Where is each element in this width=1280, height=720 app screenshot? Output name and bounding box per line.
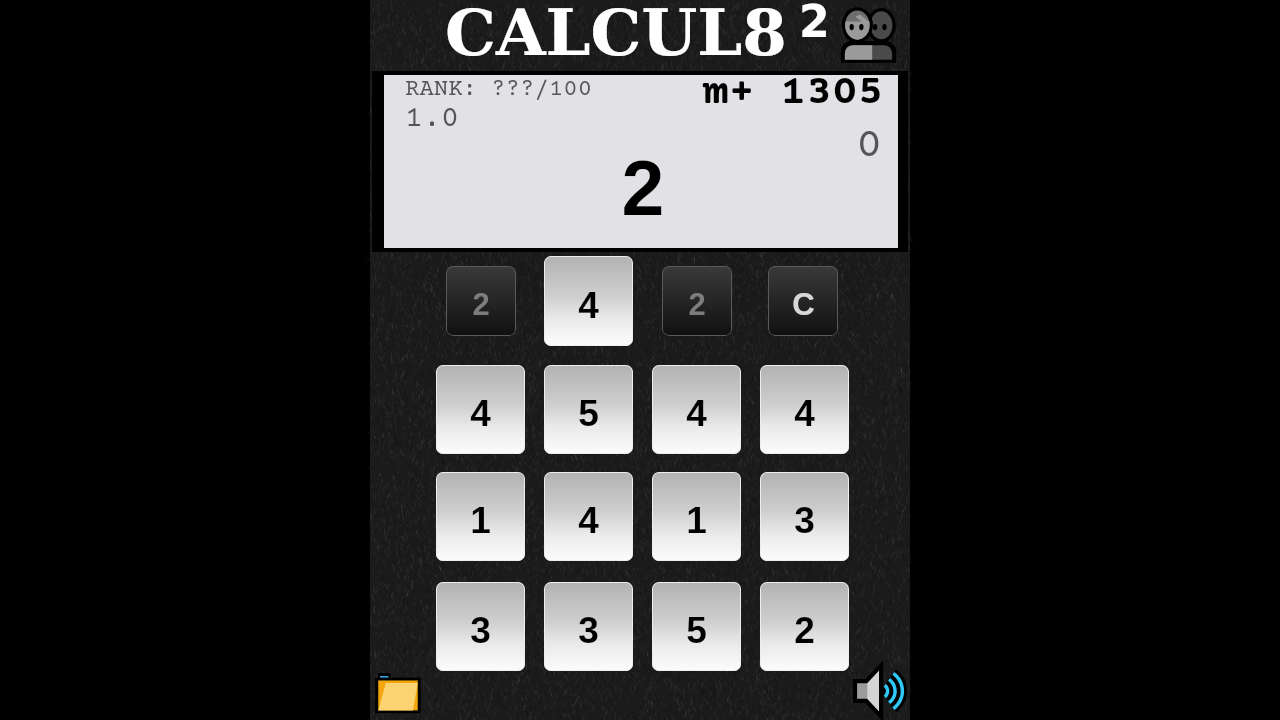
button[interactable]: 3 [544,582,633,671]
staticText: 1 [686,500,707,541]
staticText: m+ 1305 [703,69,884,117]
button[interactable]: 5 [544,365,633,454]
staticText: 0 [856,122,883,171]
button[interactable]: 3 [436,582,525,671]
staticText: 1.0 [405,103,459,137]
button[interactable]: 2 [760,582,849,671]
button[interactable]: 4 [544,256,633,346]
button[interactable]: 4 [760,365,849,454]
button[interactable]: Multiplayer [840,8,897,63]
staticText: 2 [472,287,490,322]
button[interactable]: 4 [652,365,741,454]
button[interactable]: 4 [544,472,633,561]
button[interactable]: 1 [652,472,741,561]
button[interactable]: 1 [436,472,525,561]
staticText: 4 [578,500,599,541]
staticText: 2 [794,610,815,651]
staticText: 2 [386,145,900,231]
staticText: 3 [794,500,815,541]
staticText: 4 [686,393,707,434]
staticText: CALCUL8 [445,0,787,70]
button[interactable]: 4 [436,365,525,454]
staticText: RANK: ???/100 [405,76,593,103]
button[interactable]: 5 [652,582,741,671]
staticText: C [792,287,815,322]
staticText: 3 [578,610,599,651]
staticText: 5 [686,610,707,651]
staticText: 4 [470,393,491,434]
button[interactable]: 2 [446,266,516,336]
button[interactable]: 2 [662,266,732,336]
staticText: 3 [470,610,491,651]
button[interactable]: C [768,266,838,336]
button[interactable]: 3 [760,472,849,561]
staticText: 5 [578,393,599,434]
staticText: 2 [799,0,830,47]
button[interactable]: Toggle sound [852,668,903,714]
staticText: 1 [470,500,491,541]
staticText: 4 [794,393,815,434]
button[interactable]: Open saved games [373,671,423,715]
staticText: 2 [688,287,706,322]
staticText: 4 [578,285,599,326]
